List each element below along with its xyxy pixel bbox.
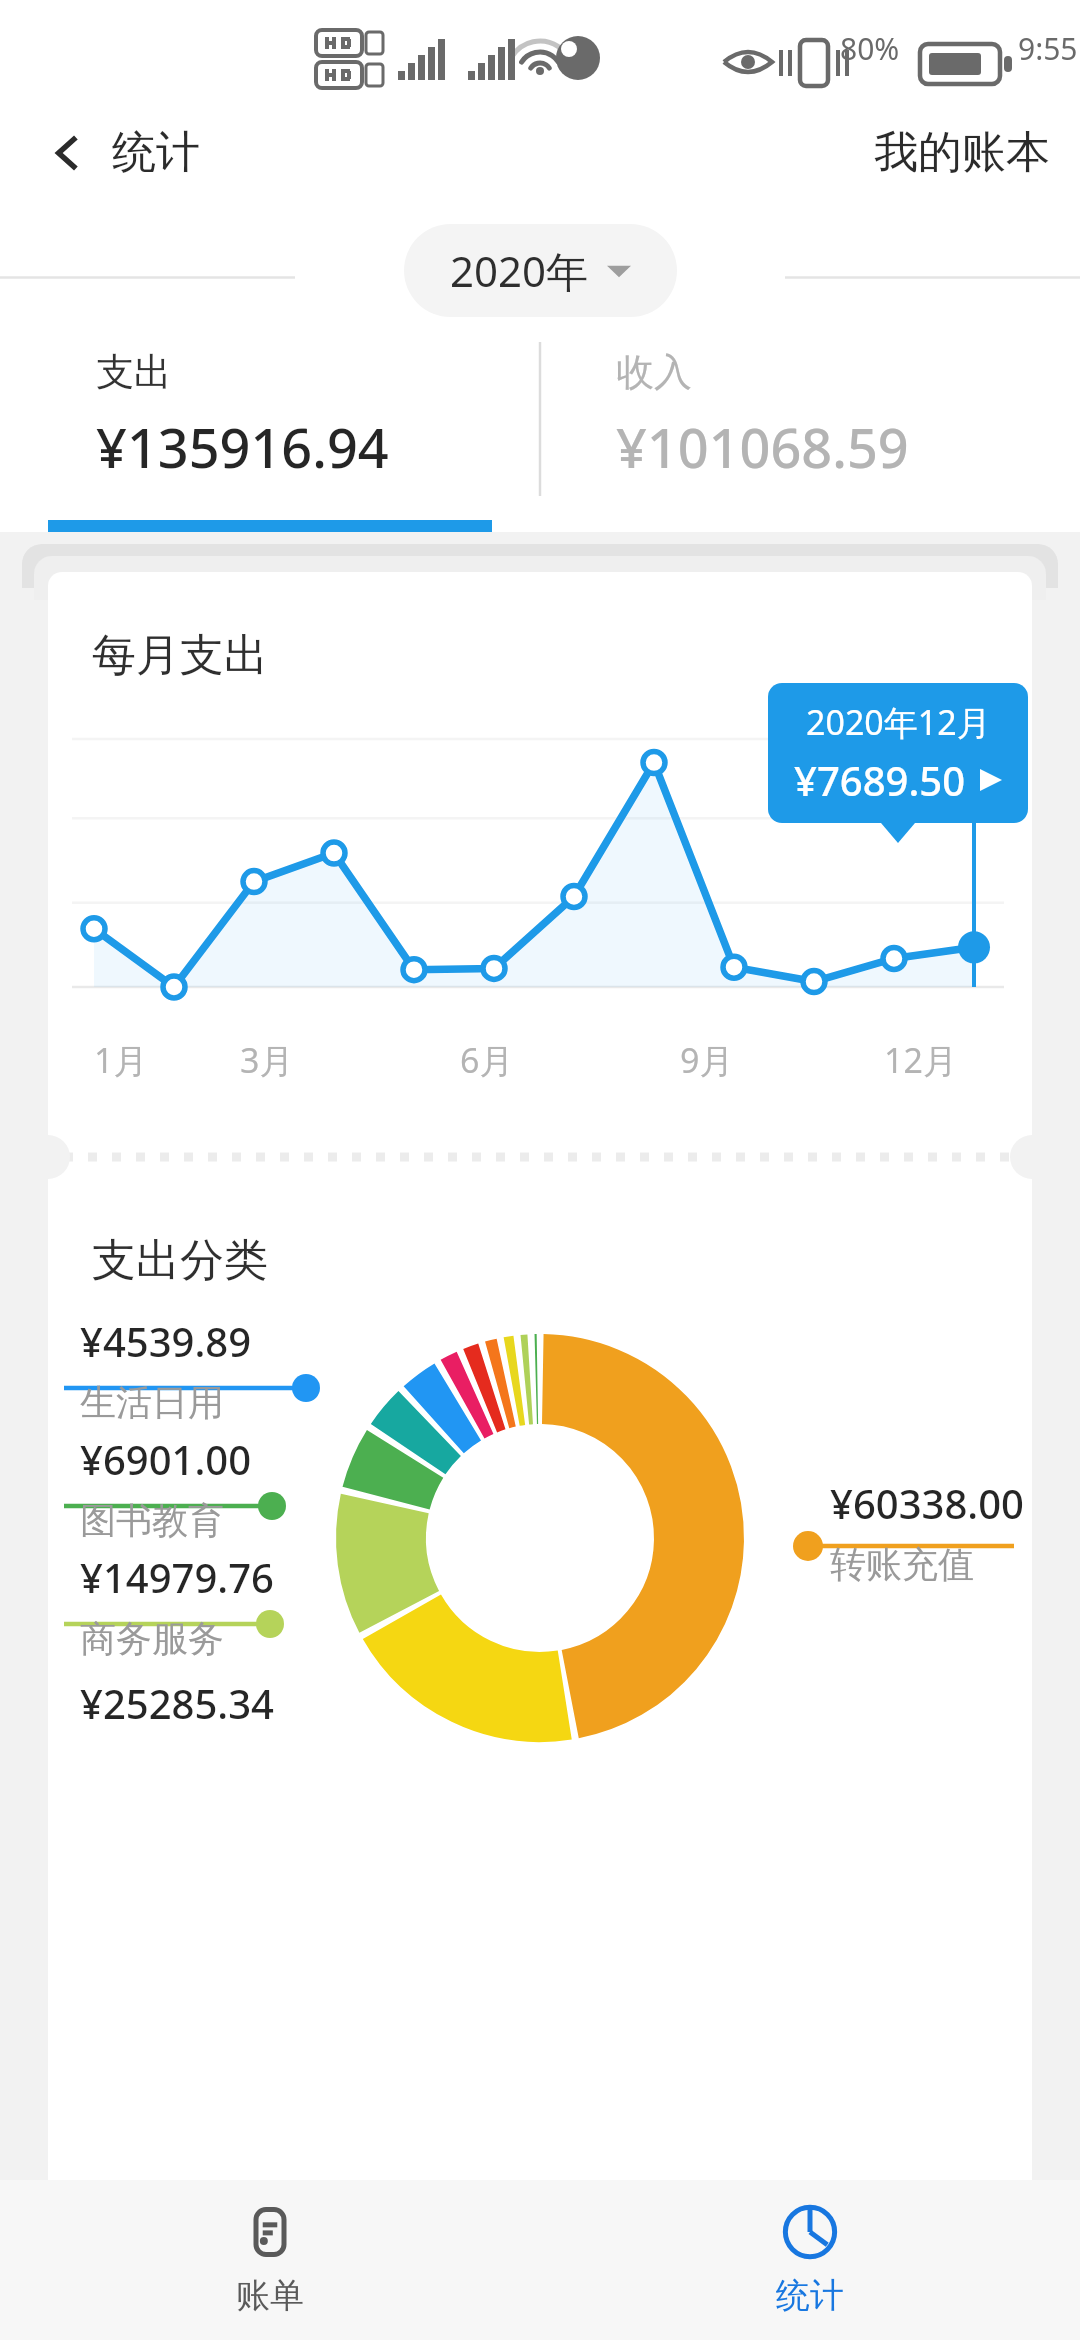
other: Back: [48, 134, 86, 172]
staticText: 商务服务: [80, 1616, 224, 1661]
button[interactable]: 2020年: [404, 224, 677, 317]
staticText: 统计: [112, 125, 200, 180]
staticText: 9月: [680, 1037, 734, 1083]
staticText: ¥14979.76: [80, 1550, 274, 1604]
staticText: ¥101068.59: [616, 410, 909, 484]
button[interactable]: ¥4539.89: [80, 1314, 252, 1425]
staticText: ¥135916.94: [96, 410, 389, 484]
staticText: 支出: [96, 348, 172, 396]
button[interactable]: Back: [30, 113, 218, 192]
staticText: ¥25285.34: [80, 1676, 274, 1730]
staticText: 生活日用: [80, 1380, 224, 1425]
button[interactable]: ¥25285.34: [80, 1676, 274, 1730]
other: 账单: [242, 2204, 298, 2260]
other: 统计: [782, 2204, 838, 2260]
button[interactable]: ¥60338.00: [830, 1476, 1024, 1587]
button[interactable]: ¥14979.76: [80, 1550, 274, 1661]
staticText: 我的账本: [874, 125, 1050, 180]
staticText: ¥60338.00: [830, 1476, 1024, 1530]
staticText: 3月: [240, 1037, 294, 1083]
button[interactable]: ¥6901.00: [80, 1432, 252, 1543]
staticText: 支出分类: [92, 1233, 268, 1288]
staticText: 统计: [776, 2274, 844, 2317]
staticText: ¥6901.00: [80, 1432, 252, 1486]
button[interactable]: 我的账本: [860, 113, 1064, 192]
staticText: 80%: [840, 28, 900, 69]
staticText: 2020年: [450, 242, 589, 299]
staticText: 12月: [884, 1037, 957, 1083]
staticText: 6月: [460, 1037, 514, 1083]
staticText: 1月: [94, 1037, 148, 1083]
staticText: 转账充值: [830, 1542, 974, 1587]
staticText: 收入: [616, 348, 692, 396]
staticText: ¥4539.89: [80, 1314, 252, 1368]
button[interactable]: 2020年12月: [768, 683, 1028, 823]
button[interactable]: 支出: [0, 332, 540, 532]
staticText: 图书教育: [80, 1498, 224, 1543]
button[interactable]: 收入: [540, 332, 1080, 532]
button[interactable]: 统计: [540, 2180, 1080, 2340]
staticText: 账单: [236, 2274, 304, 2317]
staticText: 每月支出: [92, 628, 268, 683]
button[interactable]: 账单: [0, 2180, 540, 2340]
staticText: 9:55: [1018, 28, 1078, 69]
staticText: 2020年12月: [806, 699, 991, 745]
staticText: ¥7689.50: [794, 753, 966, 807]
